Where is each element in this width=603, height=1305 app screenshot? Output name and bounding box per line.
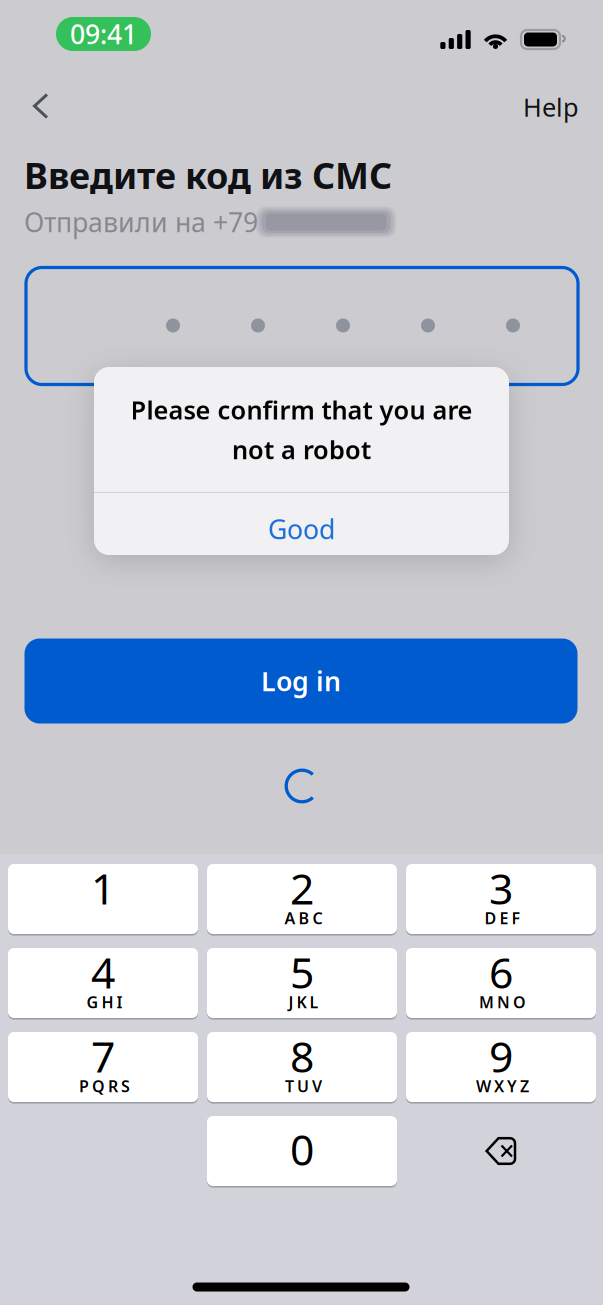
button[interactable]: Help [503,79,599,135]
staticText: not a robot [232,432,371,466]
button[interactable]: 7 [8,1032,198,1102]
staticText: DEF [484,907,520,929]
button[interactable]: 0 [207,1116,397,1186]
staticText: WXYZ [476,1075,529,1097]
staticText: 1 [91,860,115,916]
button[interactable]: 8 [207,1032,397,1102]
staticText: TUV [285,1075,322,1097]
button[interactable]: Log in [24,638,577,723]
staticText: ABC [284,907,322,929]
staticText: Введите код из СМС [24,151,392,199]
staticText: 8 [290,1028,314,1084]
staticText: Good [268,511,335,547]
button[interactable]: 6 [406,948,596,1018]
button[interactable]: 2 [207,864,397,934]
staticText: 3 [489,860,513,916]
staticText: MNO [479,991,526,1013]
staticText: 9 [489,1028,513,1084]
staticText: GHI [86,991,122,1013]
staticText: 2 [290,860,314,916]
staticText: Please confirm that you are [130,393,472,426]
button[interactable]: 3 [406,864,596,934]
staticText: 09:41 [70,16,137,52]
staticText: Отправили на +79 [24,204,258,240]
button[interactable]: 9 [406,1032,596,1102]
button[interactable]: 1 [8,864,198,934]
button[interactable]: Delete [406,1116,596,1186]
staticText: PQRS [79,1075,130,1097]
staticText: JKL [288,991,318,1013]
button[interactable]: 5 [207,948,397,1018]
staticText: Log in [261,663,341,699]
staticText: 7 [91,1028,115,1084]
button[interactable]: Good [94,498,509,560]
staticText: 5 [290,944,314,1000]
button[interactable]: 4 [8,948,198,1018]
button[interactable]: Back [10,78,72,134]
staticText: 6 [489,944,513,1000]
staticText: Help [523,90,579,124]
staticText: 4 [91,944,115,1000]
staticText: 0 [290,1121,314,1177]
